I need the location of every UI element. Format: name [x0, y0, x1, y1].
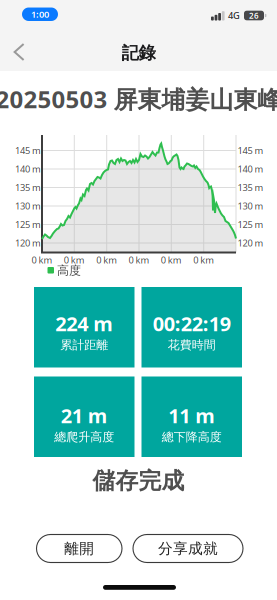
staticText: 140 m: [15, 163, 41, 175]
staticText: 0 km: [64, 254, 85, 266]
staticText: 總下降高度: [162, 430, 222, 444]
staticText: 135 m: [237, 181, 263, 194]
staticText: 離開: [64, 539, 94, 557]
staticText: 125 m: [237, 218, 263, 231]
staticText: 140 m: [237, 163, 263, 175]
button[interactable]: 1:00: [22, 7, 58, 21]
button[interactable]: 離開: [36, 534, 122, 562]
staticText: 總爬升高度: [54, 430, 114, 444]
staticText: 120 m: [237, 237, 263, 249]
staticText: 130 m: [237, 200, 263, 212]
staticText: 125 m: [15, 218, 41, 231]
staticText: 145 m: [15, 144, 41, 157]
staticText: 花費時間: [168, 338, 216, 352]
staticText: 26: [249, 10, 259, 21]
staticText: 0 km: [128, 254, 149, 266]
staticText: 120 m: [15, 237, 41, 249]
staticText: 21 m: [61, 402, 108, 429]
staticText: 累計距離: [60, 338, 108, 352]
staticText: 00:22:19: [153, 310, 231, 337]
staticText: 分享成就: [158, 539, 218, 557]
staticText: 224 m: [55, 310, 113, 337]
staticText: 0 km: [193, 254, 214, 266]
staticText: 4G: [228, 9, 240, 22]
staticText: 0 km: [96, 254, 117, 266]
staticText: 0 km: [161, 254, 182, 266]
staticText: 135 m: [15, 181, 41, 194]
staticText: 1:00: [31, 8, 49, 20]
button[interactable]: 分享成就: [133, 534, 243, 562]
staticText: 20250503 屏東埔姜山東峰: [0, 83, 277, 115]
staticText: 11 m: [168, 402, 215, 429]
staticText: 0 km: [31, 254, 52, 266]
staticText: 儲存完成: [92, 467, 184, 495]
button[interactable]: [13, 43, 37, 61]
staticText: 高度: [57, 263, 81, 278]
staticText: 145 m: [237, 144, 263, 157]
staticText: 130 m: [15, 200, 41, 212]
staticText: 記錄: [121, 42, 155, 64]
